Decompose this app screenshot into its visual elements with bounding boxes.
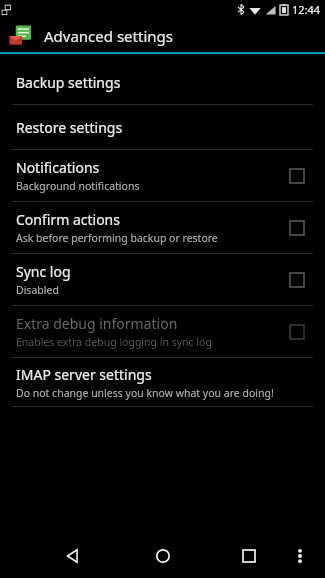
button[interactable]: Restore settings xyxy=(0,105,325,149)
button[interactable]: Toggle checkbox xyxy=(283,162,311,190)
staticText: Ask before performing backup or restore xyxy=(16,231,218,245)
button[interactable]: Back xyxy=(52,536,92,576)
button[interactable]: Extra debug information xyxy=(0,306,325,357)
button[interactable]: Toggle checkbox xyxy=(283,318,311,346)
staticText: Disabled xyxy=(16,283,59,297)
button[interactable]: Advanced settings xyxy=(0,19,325,52)
staticText: Enables extra debug logging in sync log xyxy=(16,335,212,349)
staticText: Advanced settings xyxy=(44,26,173,46)
button[interactable]: Toggle checkbox xyxy=(283,266,311,294)
button[interactable]: Confirm actions xyxy=(0,202,325,253)
staticText: Confirm actions xyxy=(16,210,120,229)
staticText: IMAP server settings xyxy=(16,365,152,384)
button[interactable]: Notifications xyxy=(0,150,325,201)
staticText: Restore settings xyxy=(16,118,123,137)
staticText: Do not change unless you know what you a… xyxy=(16,386,274,400)
staticText: 12:44 xyxy=(292,2,321,17)
staticText: Background notifications xyxy=(16,179,140,193)
button[interactable]: IMAP server settings xyxy=(0,358,325,406)
button[interactable]: Home xyxy=(143,536,183,576)
staticText: Sync log xyxy=(16,262,71,281)
staticText: Extra debug information xyxy=(16,314,178,333)
button[interactable]: More options xyxy=(283,539,317,573)
button[interactable]: Sync log xyxy=(0,254,325,305)
button[interactable]: Toggle checkbox xyxy=(283,214,311,242)
staticText: Backup settings xyxy=(16,73,121,92)
staticText: Notifications xyxy=(16,158,100,177)
button[interactable]: Backup settings xyxy=(0,60,325,104)
button[interactable]: Recent apps xyxy=(229,536,269,576)
